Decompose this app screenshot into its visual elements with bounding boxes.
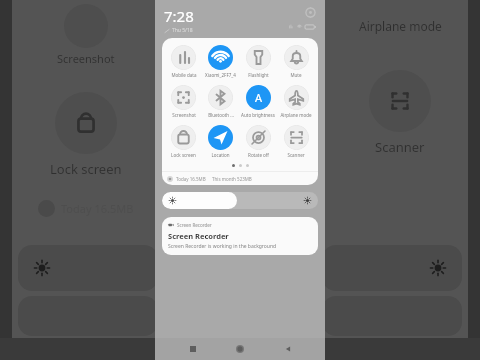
button[interactable]: Airplane mode	[277, 83, 315, 119]
staticText: Scanner	[287, 152, 305, 158]
button[interactable]: Scanner	[277, 123, 315, 159]
staticText: Airplane mode	[359, 18, 442, 34]
staticText: Mobile data	[171, 72, 197, 78]
button[interactable]: Location	[202, 123, 239, 159]
staticText: Xiaomi_2FF7_4	[205, 72, 236, 78]
staticText: Thu 5/18	[172, 27, 193, 34]
button[interactable]: Lock screen	[165, 123, 202, 159]
button[interactable]: Brightness	[162, 192, 318, 209]
button[interactable]: Flashlight	[239, 43, 277, 79]
staticText: Flashlight	[248, 72, 269, 78]
staticText: Screen Recorder	[177, 222, 212, 228]
button[interactable]: Settings	[305, 7, 316, 18]
button[interactable]: Rotate off	[239, 123, 277, 159]
staticText: Rotate off	[248, 152, 269, 158]
button[interactable]: Screen Recorder	[162, 217, 318, 255]
button[interactable]: Xiaomi_2FF7_4	[202, 43, 239, 79]
staticText: 7:28	[164, 6, 194, 26]
staticText: Screenshot	[172, 112, 196, 118]
button[interactable]: Back	[278, 339, 298, 359]
staticText: Screen Recorder is working in the backgr…	[168, 243, 277, 250]
button[interactable]: A	[239, 83, 277, 119]
staticText: Today 16.5MB	[176, 176, 206, 182]
staticText: Airplane mode	[280, 112, 312, 118]
button[interactable]: Screenshot	[165, 83, 202, 119]
staticText: Auto brightness	[241, 112, 275, 118]
staticText: Lock screen	[50, 160, 122, 178]
staticText: A	[255, 90, 263, 105]
staticText: Screenshot	[57, 51, 115, 66]
button[interactable]: Today 16.5MB	[162, 172, 318, 185]
staticText: Screen Recorder	[168, 231, 229, 241]
button[interactable]: Mobile data	[165, 43, 202, 79]
staticText: Lock screen	[171, 152, 196, 158]
button[interactable]: Home	[230, 339, 250, 359]
staticText: Location	[211, 152, 230, 158]
staticText: Bluetooth ...	[208, 112, 234, 118]
staticText: Scanner	[375, 138, 425, 156]
button[interactable]: Recents	[183, 339, 203, 359]
button[interactable]: Mute	[277, 43, 315, 79]
staticText: Mute	[290, 72, 302, 78]
button[interactable]: Bluetooth ...	[202, 83, 239, 119]
staticText: This month 523MB	[212, 176, 252, 182]
